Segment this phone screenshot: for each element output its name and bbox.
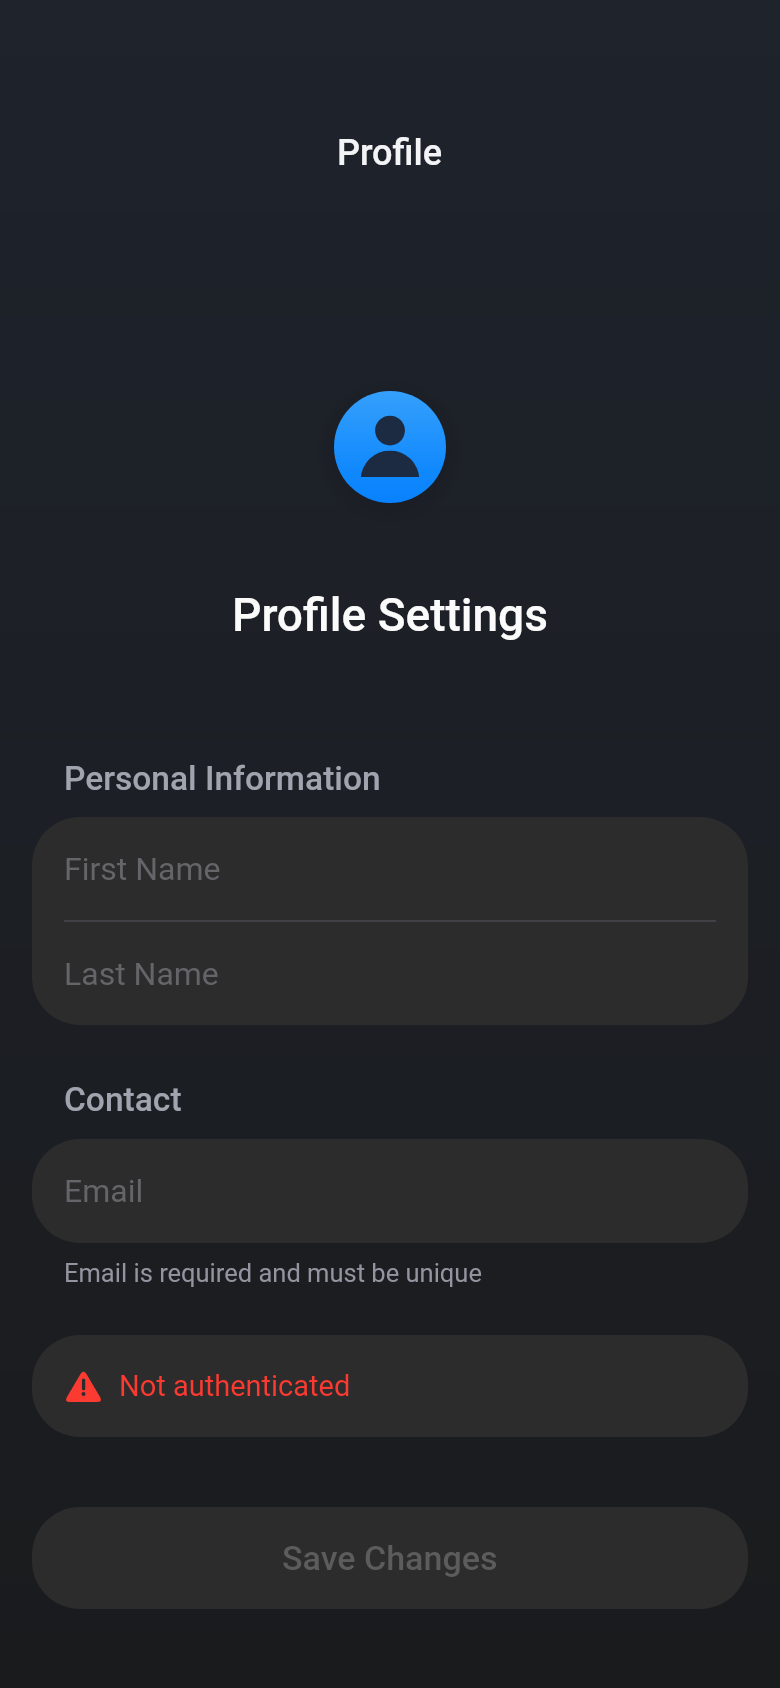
button[interactable]: First Name [32,817,748,920]
staticText: Email [64,1172,144,1210]
button[interactable]: Save Changes [32,1507,748,1609]
button[interactable]: Not authenticated [32,1335,748,1437]
staticText: Contact [64,1080,182,1119]
staticText: Profile [337,132,443,174]
staticText: Personal Information [64,759,381,798]
staticText: Save Changes [282,1538,498,1578]
staticText: First Name [64,850,221,888]
staticText: Email is required and must be unique [64,1258,482,1288]
button[interactable]: Last Name [32,922,748,1025]
button[interactable]: Profile photo [310,367,470,527]
button[interactable]: Email [32,1139,748,1242]
staticText: Not authenticated [119,1369,351,1403]
staticText: Last Name [64,955,219,993]
staticText: Profile Settings [232,588,548,642]
